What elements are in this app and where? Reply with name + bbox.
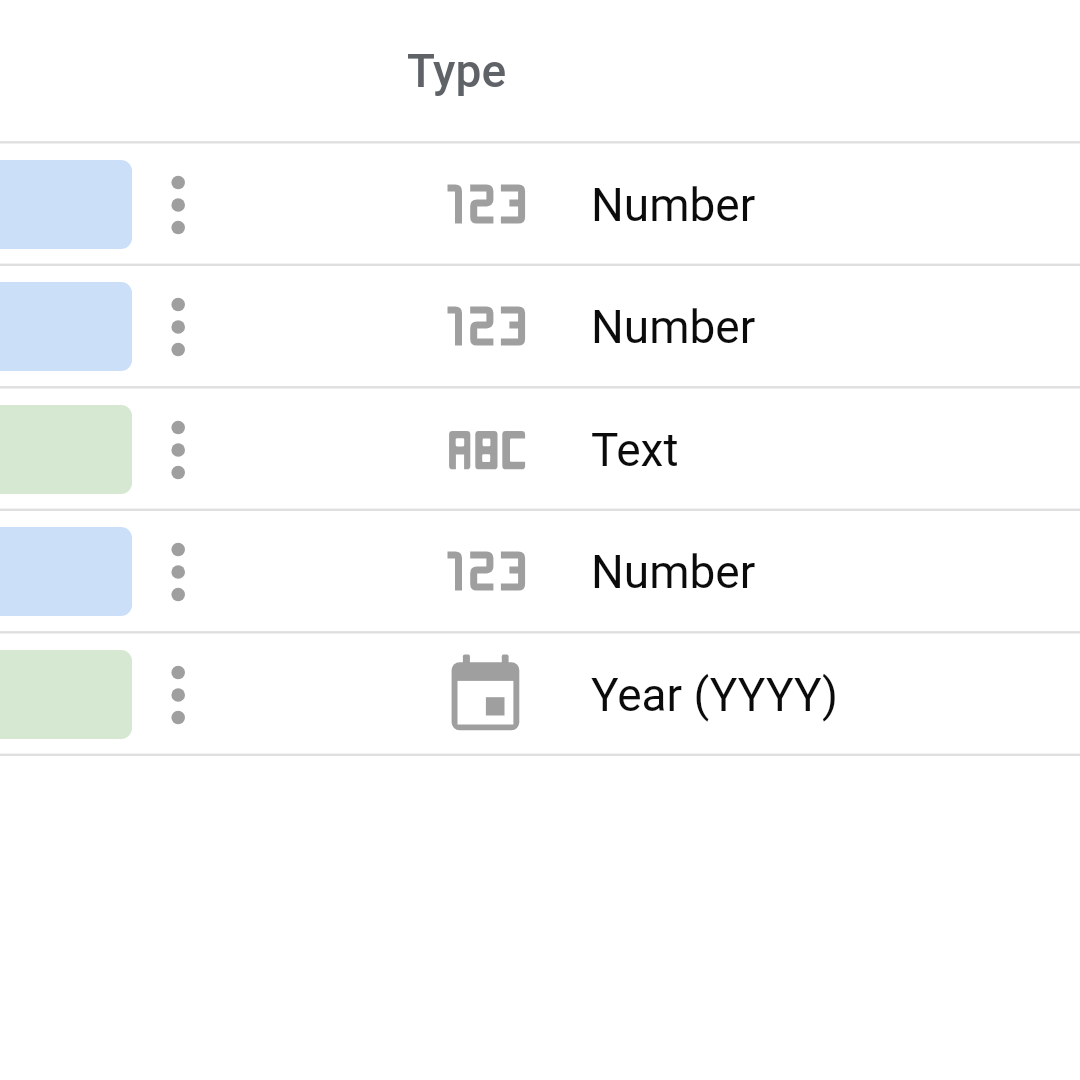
button[interactable]: More options [0, 266, 1080, 386]
staticText: Number [591, 545, 756, 599]
staticText: Number [591, 300, 756, 354]
button[interactable]: More options [0, 511, 1080, 631]
other: Text column type [444, 409, 532, 489]
staticText: Year (YYYY) [591, 668, 839, 722]
button[interactable]: More options [155, 548, 203, 596]
button[interactable]: More options [155, 303, 203, 351]
staticText: Number [591, 178, 756, 232]
button[interactable]: More options [155, 426, 203, 474]
button[interactable]: More options [0, 144, 1080, 264]
button[interactable]: More options [155, 181, 203, 229]
staticText: Text [591, 423, 679, 477]
other: Year (YYYY) column type [444, 654, 532, 734]
button[interactable]: More options [155, 671, 203, 719]
button[interactable]: More options [0, 389, 1080, 509]
other: Number column type [444, 164, 532, 244]
button[interactable]: More options [0, 634, 1080, 754]
staticText: Type [407, 44, 507, 98]
other: Number column type [444, 286, 532, 366]
button[interactable]: Type [200, 0, 720, 141]
other: Number column type [444, 531, 532, 611]
